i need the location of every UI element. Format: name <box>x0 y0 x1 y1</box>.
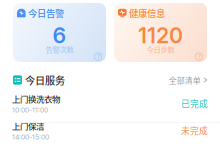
button[interactable]: 全部清单 <box>169 74 207 86</box>
staticText: 上门保洁 <box>12 120 44 132</box>
staticText: 10:00-11:00 <box>12 106 48 114</box>
button[interactable]: 健康信息 <box>114 3 207 62</box>
staticText: 告警次数 <box>45 44 73 54</box>
staticText: 健康信息 <box>129 6 165 20</box>
staticText: 已完成 <box>181 97 208 110</box>
staticText: ? <box>96 52 99 61</box>
staticText: 1120 <box>138 23 183 48</box>
staticText: 全部清单 <box>169 74 201 86</box>
staticText: 今日告警 <box>28 6 64 20</box>
staticText: 上门换洗衣物 <box>12 93 60 105</box>
button[interactable]: 今日告警 <box>13 3 106 62</box>
staticText: ? <box>197 52 200 61</box>
staticText: 今日步数 <box>146 44 174 54</box>
button[interactable]: 上门保洁 <box>0 117 220 144</box>
staticText: 14:00-15:00 <box>12 133 49 141</box>
staticText: 今日服务 <box>25 73 65 87</box>
staticText: 未完成 <box>181 124 208 137</box>
button[interactable]: 上门换洗衣物 <box>0 90 220 117</box>
staticText: 6 <box>52 23 66 48</box>
